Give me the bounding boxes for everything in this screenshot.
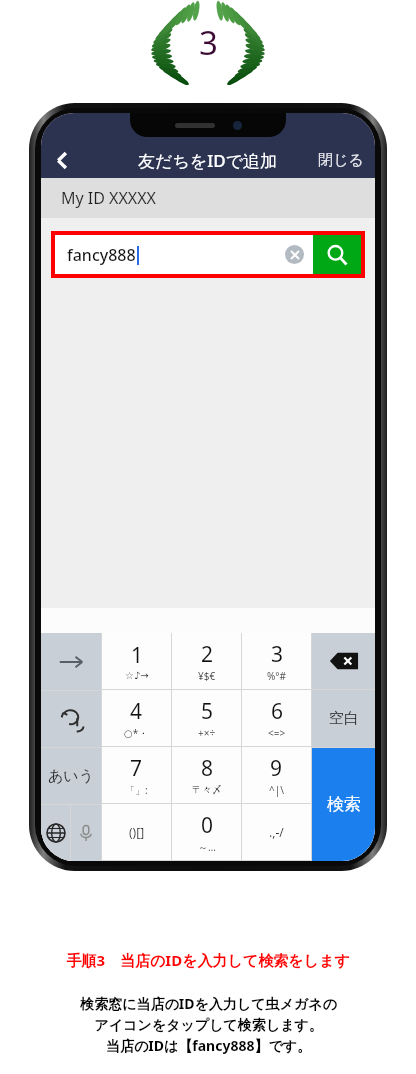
- button[interactable]: Search: [313, 235, 361, 274]
- staticText: 3: [271, 640, 284, 669]
- button[interactable]: 4: [102, 690, 171, 746]
- button[interactable]: Next: [41, 633, 101, 690]
- staticText: 5: [201, 697, 214, 726]
- button[interactable]: 1: [102, 633, 171, 689]
- button[interactable]: 6: [242, 690, 311, 746]
- staticText: 8: [201, 754, 214, 783]
- button[interactable]: 0: [172, 804, 241, 860]
- staticText: +×÷: [198, 726, 216, 740]
- button[interactable]: Clear text: [285, 245, 304, 264]
- staticText: 検索窓に当店のIDを入力して虫メガネの アイコンをタップして検索します。 当店の…: [80, 994, 337, 1056]
- staticText: あいう: [48, 767, 95, 786]
- staticText: 閉じる: [318, 151, 364, 170]
- button[interactable]: 8: [172, 747, 241, 803]
- button[interactable]: 検索: [312, 748, 375, 861]
- button[interactable]: 3: [242, 633, 311, 689]
- staticText: 1: [131, 641, 144, 670]
- staticText: ^|\: [269, 783, 284, 797]
- staticText: <=>: [268, 726, 286, 740]
- button[interactable]: 5: [172, 690, 241, 746]
- button[interactable]: 7: [102, 747, 171, 803]
- button[interactable]: 閉じる: [307, 142, 375, 178]
- button[interactable]: Backspace: [312, 633, 375, 689]
- button[interactable]: 空白: [312, 690, 375, 747]
- staticText: 「」:: [125, 783, 148, 797]
- staticText: %°#: [267, 669, 287, 683]
- staticText: 0: [201, 811, 214, 840]
- button[interactable]: Language: [41, 805, 70, 861]
- button[interactable]: ()[]: [102, 804, 171, 860]
- button[interactable]: My ID XXXXX: [41, 178, 375, 218]
- staticText: ～…: [198, 840, 216, 854]
- staticText: My ID XXXXX: [61, 187, 156, 209]
- staticText: 2: [201, 640, 214, 669]
- button[interactable]: Back: [41, 142, 83, 178]
- staticText: ○*・: [124, 726, 149, 740]
- button[interactable]: Voice input: [71, 805, 101, 861]
- staticText: fancy888: [67, 244, 136, 266]
- staticText: 空白: [329, 709, 359, 728]
- button[interactable]: 2: [172, 633, 241, 689]
- button[interactable]: 9: [242, 747, 311, 803]
- staticText: 手順3 当店のIDを入力して検索をします: [66, 950, 350, 970]
- staticText: ¥$€: [198, 669, 216, 683]
- staticText: ()[]: [129, 824, 145, 840]
- button[interactable]: .,-/: [242, 804, 311, 860]
- button[interactable]: あいう: [41, 748, 101, 804]
- staticText: 6: [271, 697, 284, 726]
- staticText: 3: [199, 20, 218, 65]
- staticText: 4: [130, 697, 143, 726]
- staticText: ☆♪→: [125, 670, 149, 682]
- staticText: 友だちをIDで追加: [138, 149, 278, 172]
- staticText: .,-/: [269, 824, 284, 840]
- button[interactable]: fancy888: [55, 235, 313, 274]
- button[interactable]: Undo: [41, 691, 101, 747]
- staticText: 9: [270, 754, 283, 783]
- staticText: 7: [130, 754, 143, 783]
- staticText: 〒々〆: [192, 783, 222, 796]
- staticText: 検索: [327, 794, 361, 815]
